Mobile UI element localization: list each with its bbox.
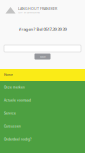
- staticText: Cursussen: [4, 125, 21, 128]
- staticText: LANGHOUT FRANEKER: [18, 6, 57, 11]
- staticText: Actuele voorraad: [4, 99, 31, 102]
- staticText: Service: [4, 112, 16, 115]
- staticText: Home: [4, 73, 13, 77]
- button[interactable]: Service: [0, 107, 85, 120]
- button[interactable]: Zoeken: [34, 53, 50, 59]
- staticText: Zoeken: [39, 55, 45, 58]
- button[interactable]: Onderdeel nodig?: [0, 133, 85, 146]
- button[interactable]: Cursussen: [0, 120, 85, 133]
- staticText: Onze merken: [4, 86, 25, 89]
- staticText: Vragen? Bel 0517-39 39 39: [18, 26, 66, 32]
- staticText: tuin- en parkmachines: [18, 11, 40, 14]
- button[interactable]: Onze merken: [0, 81, 85, 94]
- button[interactable]: Home: [0, 69, 85, 81]
- button[interactable]: Actuele voorraad: [0, 94, 85, 107]
- staticText: Onderdeel nodig?: [4, 138, 32, 141]
